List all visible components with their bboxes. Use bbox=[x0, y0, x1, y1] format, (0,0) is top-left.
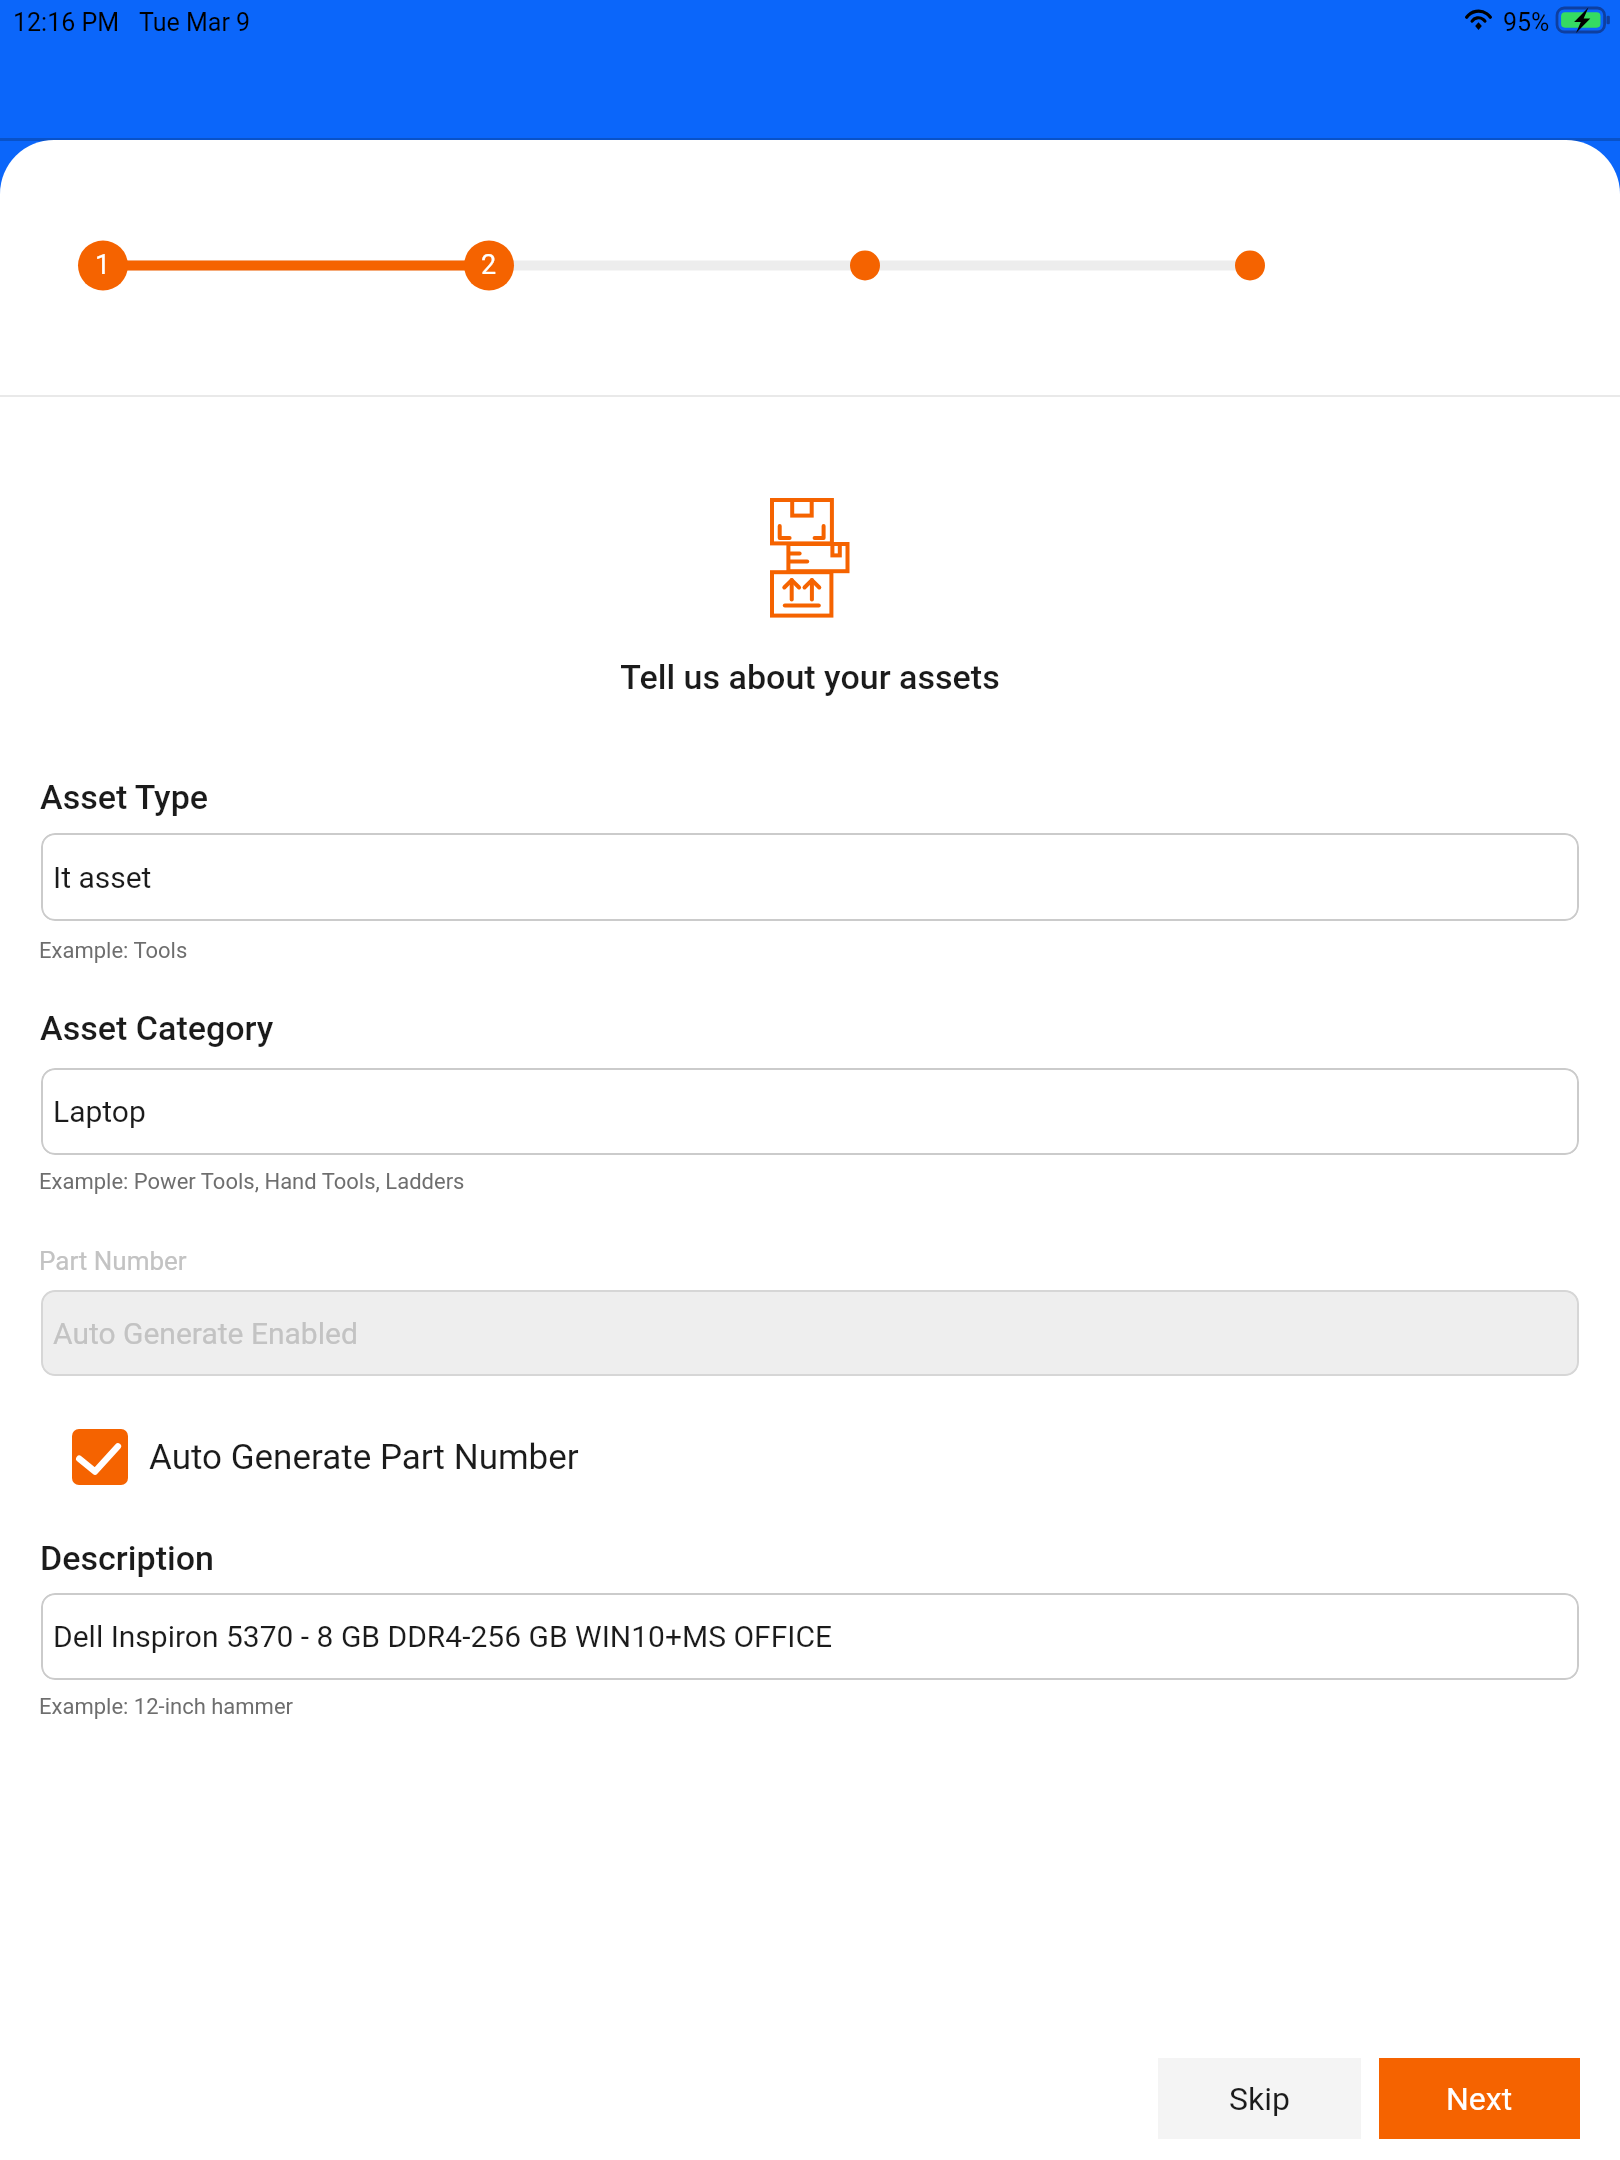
staticText: Tue Mar 9 bbox=[139, 8, 251, 37]
staticText: It asset bbox=[53, 860, 152, 895]
staticText: Example: 12-inch hammer bbox=[39, 1694, 294, 1720]
staticText: Asset Category bbox=[40, 1008, 274, 1048]
staticText: Asset Type bbox=[40, 777, 209, 817]
staticText: Example: Tools bbox=[39, 938, 188, 964]
button[interactable]: Laptop bbox=[41, 1068, 1579, 1155]
staticText: 1 bbox=[95, 249, 111, 281]
button[interactable]: Step 4 bbox=[1230, 245, 1270, 285]
staticText: Next bbox=[1446, 2080, 1513, 2118]
staticText: Skip bbox=[1229, 2080, 1290, 2118]
button[interactable]: 1 bbox=[78, 240, 128, 290]
button[interactable]: Auto Generate Part Number bbox=[72, 1429, 579, 1485]
staticText: Dell Inspiron 5370 - 8 GB DDR4-256 GB WI… bbox=[53, 1619, 832, 1654]
button[interactable]: It asset bbox=[41, 833, 1579, 921]
staticText: Laptop bbox=[53, 1094, 146, 1129]
button[interactable]: Dell Inspiron 5370 - 8 GB DDR4-256 GB WI… bbox=[41, 1593, 1579, 1680]
button[interactable]: Skip bbox=[1158, 2058, 1361, 2139]
staticText: Part Number bbox=[39, 1246, 187, 1276]
staticText: 2 bbox=[481, 249, 497, 281]
staticText: 12:16 PM bbox=[13, 8, 120, 37]
staticText: Tell us about your assets bbox=[620, 657, 1000, 697]
button[interactable]: 2 bbox=[464, 240, 514, 290]
staticText: Auto Generate Part Number bbox=[149, 1437, 579, 1478]
other: Assets bbox=[770, 498, 850, 618]
staticText: Auto Generate Enabled bbox=[53, 1316, 358, 1351]
button[interactable]: Next bbox=[1379, 2058, 1580, 2139]
staticText: 95% bbox=[1503, 8, 1550, 37]
button[interactable]: Auto Generate Enabled bbox=[41, 1290, 1579, 1376]
staticText: Description bbox=[40, 1538, 214, 1578]
button[interactable]: Step 3 bbox=[845, 245, 885, 285]
staticText: Example: Power Tools, Hand Tools, Ladder… bbox=[39, 1169, 465, 1195]
